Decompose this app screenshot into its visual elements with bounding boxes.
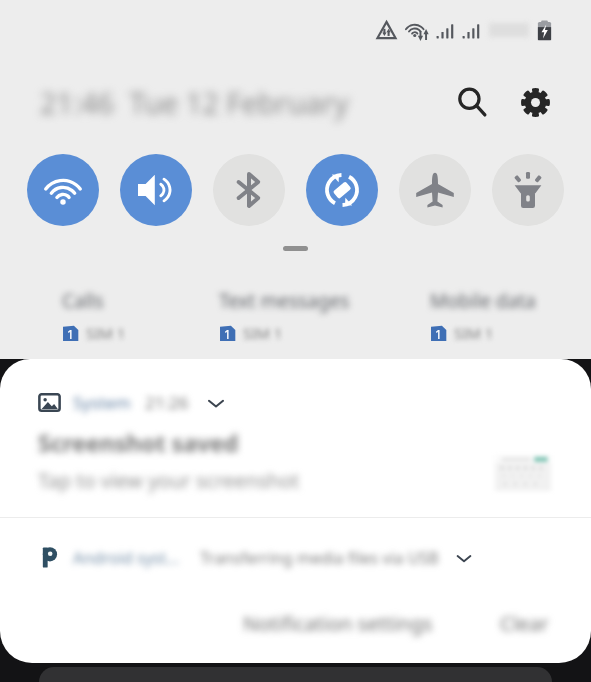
staticText: Calls	[62, 288, 104, 314]
staticText: SIM 1	[454, 323, 494, 343]
staticText: 1	[224, 326, 231, 342]
button[interactable]: Sound	[120, 154, 192, 226]
staticText: 21:26	[145, 391, 189, 414]
button[interactable]: Notification settings	[231, 600, 445, 647]
staticText: 1	[67, 326, 74, 342]
button[interactable]: Mobile data	[430, 288, 536, 343]
button[interactable]: Bluetooth	[213, 154, 285, 226]
staticText: Clear	[500, 610, 549, 637]
button[interactable]: Calls	[62, 288, 126, 343]
button[interactable]: Android syst...	[0, 518, 591, 596]
button[interactable]: Clear	[488, 600, 561, 647]
staticText: SIM 1	[243, 323, 283, 343]
button[interactable]: Flight mode	[399, 154, 471, 226]
staticText: System	[73, 391, 131, 414]
staticText: Tap to view your screenshot	[38, 467, 300, 494]
staticText: SIM 1	[86, 323, 126, 343]
button[interactable]: Settings	[511, 78, 559, 126]
button[interactable]: Text messages	[219, 288, 350, 343]
staticText: Transferring media files via USB	[200, 547, 439, 569]
button[interactable]: System	[0, 359, 591, 517]
staticText: Notification settings	[243, 610, 433, 637]
staticText: 1	[435, 326, 442, 342]
button[interactable]: Flashlight	[492, 154, 564, 226]
staticText: Text messages	[219, 288, 350, 314]
staticText: Android syst...	[73, 547, 180, 569]
button[interactable]: Search	[448, 78, 496, 126]
staticText: Mobile data	[430, 288, 536, 314]
staticText: Screenshot saved	[38, 427, 239, 458]
button[interactable]: Auto rotate	[306, 154, 378, 226]
button[interactable]: Wi-Fi	[27, 154, 99, 226]
staticText: 21:46 Tue 12 February	[40, 83, 349, 122]
